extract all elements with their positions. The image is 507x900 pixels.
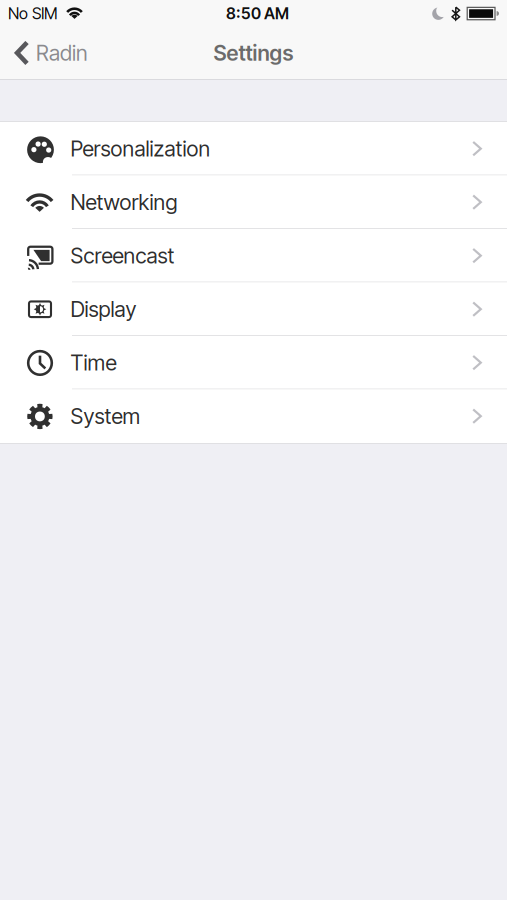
staticText: 8:50 AM — [226, 4, 289, 23]
button[interactable]: Networking — [0, 175, 507, 229]
button[interactable]: Display — [0, 282, 507, 336]
button[interactable]: Back — [0, 40, 88, 66]
button[interactable]: Time — [0, 336, 507, 389]
staticText: Personalization — [70, 136, 210, 161]
staticText: Radin — [36, 40, 88, 66]
staticText: No SIM — [8, 4, 58, 23]
button[interactable]: Screencast — [0, 229, 507, 282]
staticText: Display — [70, 297, 136, 322]
staticText: Screencast — [70, 243, 174, 268]
staticText: Time — [70, 350, 116, 375]
staticText: System — [70, 404, 140, 429]
button[interactable]: Personalization — [0, 122, 507, 175]
staticText: Networking — [70, 190, 177, 215]
button[interactable]: System — [0, 389, 507, 443]
staticText: Settings — [213, 40, 293, 66]
